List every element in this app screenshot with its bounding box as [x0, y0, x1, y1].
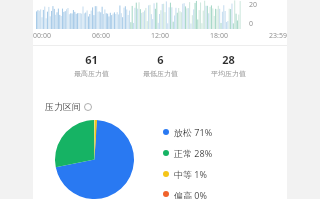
staticText: 23:59 — [269, 31, 287, 41]
staticText: 28 — [222, 52, 235, 67]
staticText: 偏高 0% — [174, 189, 207, 199]
staticText: 放松 71% — [174, 126, 213, 138]
staticText: 61 — [85, 52, 98, 67]
staticText: 12:00 — [151, 31, 169, 41]
staticText: 压力区间 — [45, 101, 81, 112]
staticText: 0 — [249, 19, 254, 29]
button[interactable]: 放松 71% — [163, 126, 213, 138]
button[interactable]: 偏高 0% — [163, 189, 207, 199]
staticText: 06:00 — [92, 31, 110, 41]
staticText: 中等 1% — [174, 168, 207, 180]
button[interactable]: 压力区间 说明 — [45, 101, 92, 112]
staticText: 00:00 — [33, 31, 51, 41]
staticText: 平均压力值 — [211, 69, 246, 78]
staticText: 正常 28% — [174, 147, 213, 159]
staticText: 20 — [249, 0, 258, 10]
button[interactable]: 中等 1% — [163, 168, 207, 180]
staticText: 18:00 — [210, 31, 228, 41]
staticText: 6 — [157, 52, 164, 67]
staticText: 最低压力值 — [143, 69, 178, 78]
button[interactable]: 正常 28% — [163, 147, 213, 159]
staticText: 最高压力值 — [74, 69, 109, 78]
